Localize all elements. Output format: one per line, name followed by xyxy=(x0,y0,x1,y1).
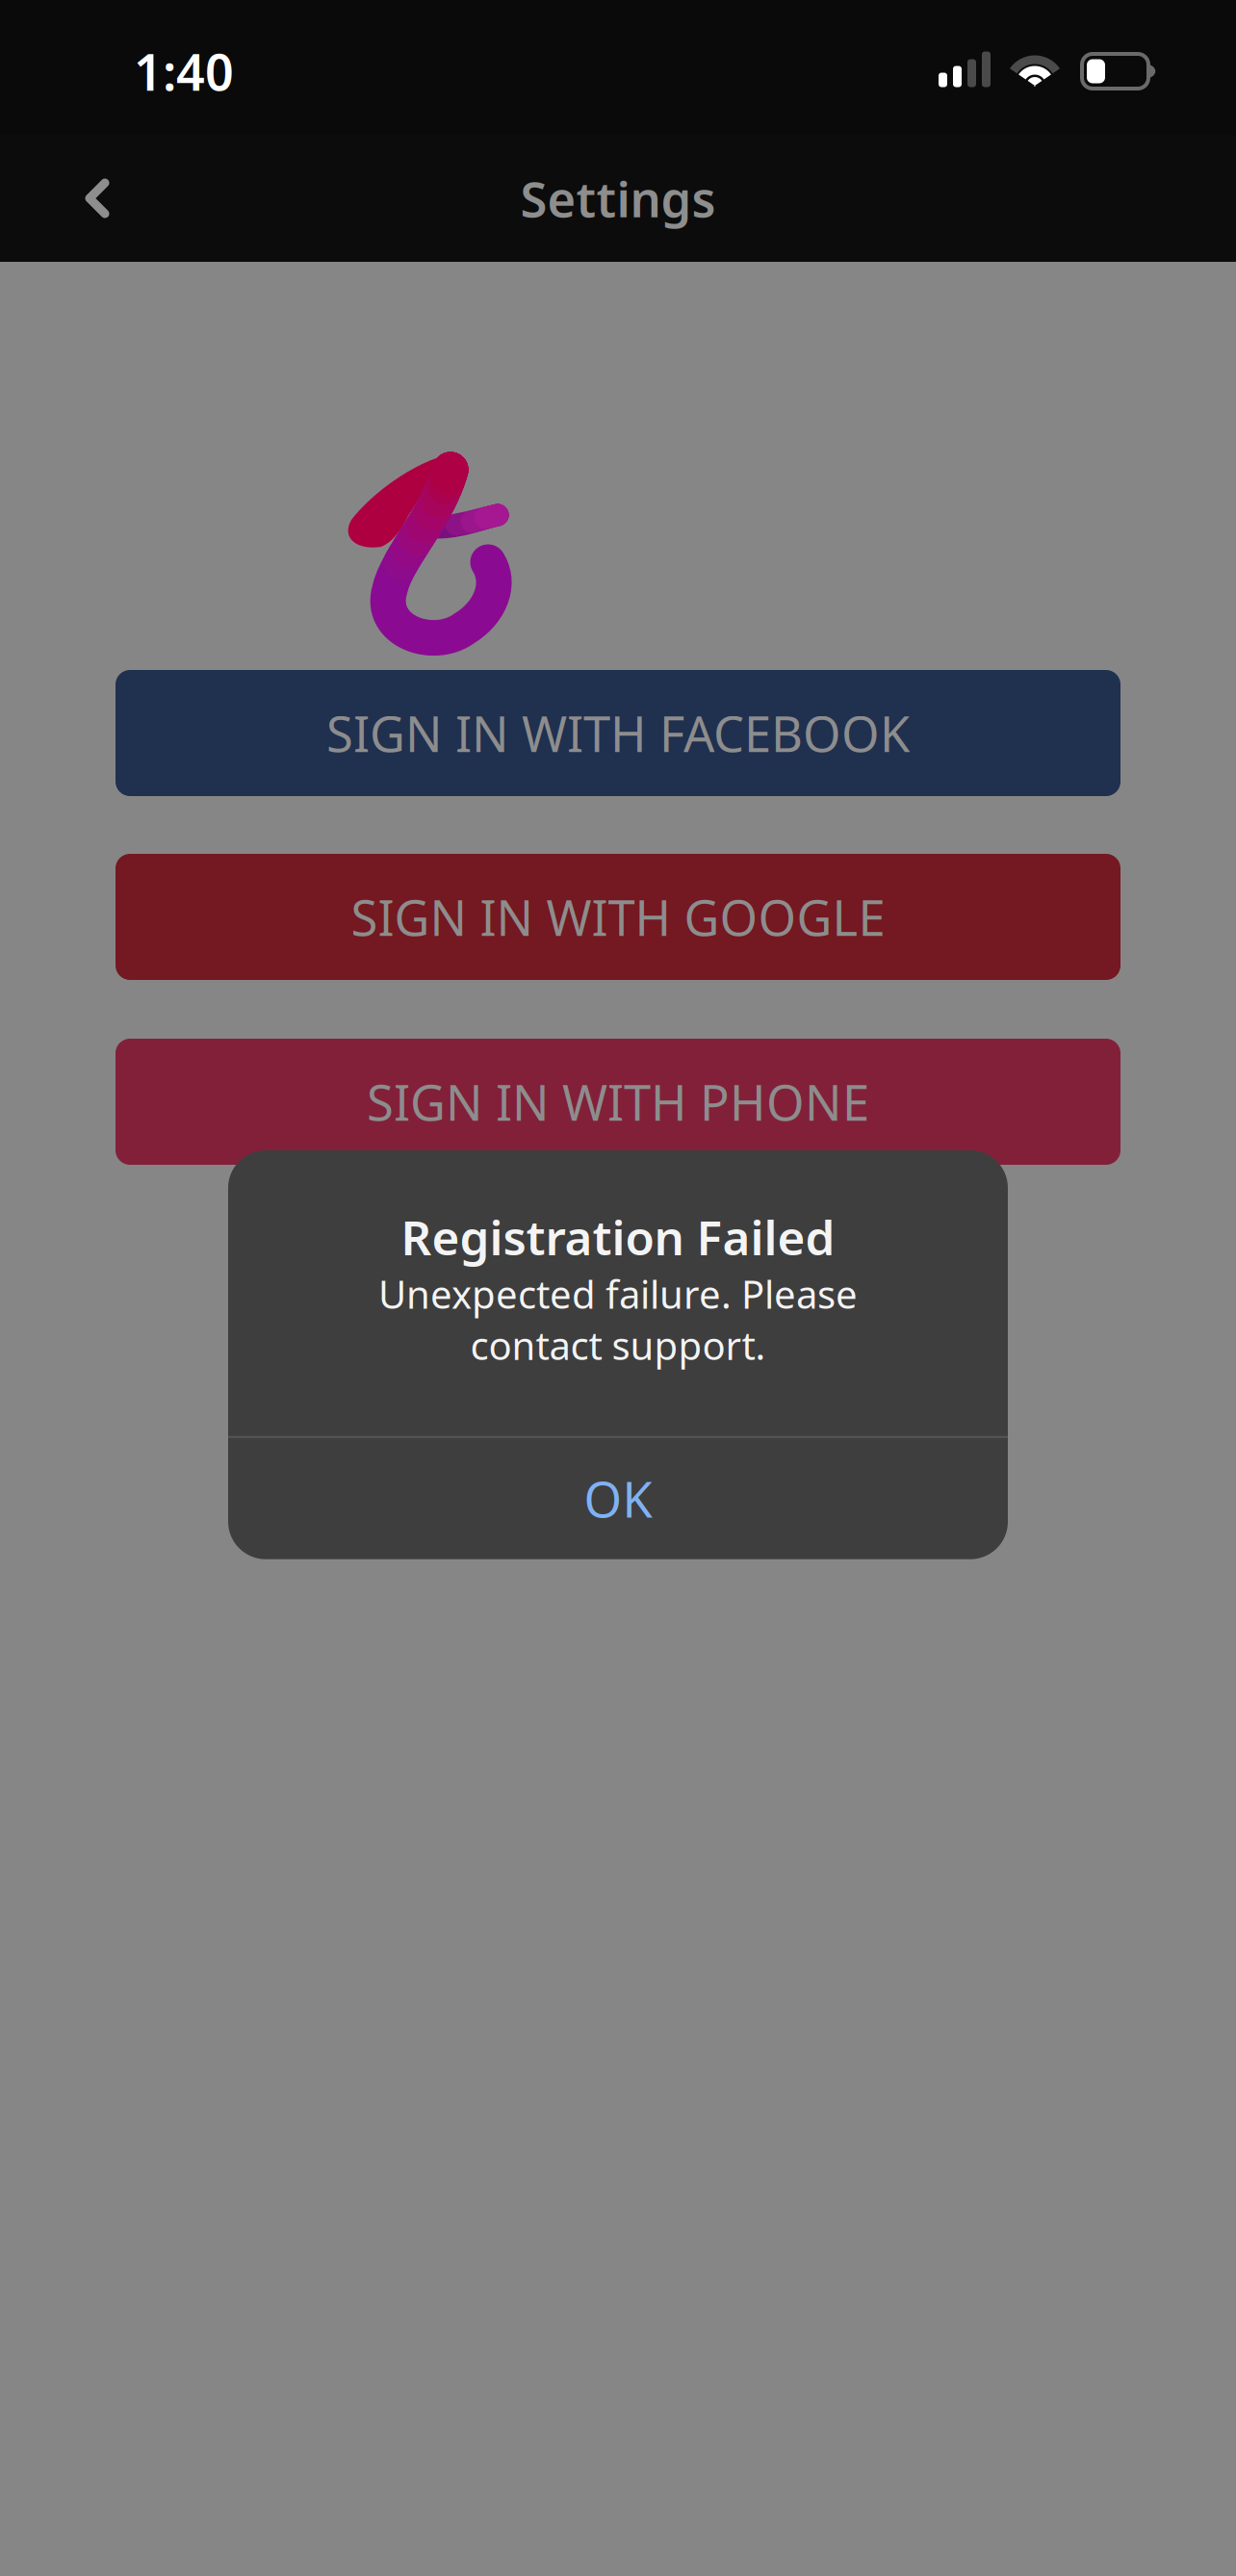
staticText: SIGN IN WITH GOOGLE xyxy=(351,885,885,949)
staticText: contact support. xyxy=(470,1319,766,1370)
staticText: Settings xyxy=(520,166,716,231)
button[interactable]: Back xyxy=(0,142,148,254)
staticText: 1:40 xyxy=(134,38,234,105)
button[interactable]: SIGN IN WITH GOOGLE xyxy=(116,854,1120,980)
staticText: OK xyxy=(584,1466,652,1531)
staticText: Unexpected failure. Please xyxy=(378,1268,858,1319)
staticText: Registration Failed xyxy=(401,1205,835,1268)
button[interactable]: OK xyxy=(228,1438,1008,1559)
button[interactable]: SIGN IN WITH PHONE xyxy=(116,1039,1120,1165)
staticText: SIGN IN WITH FACEBOOK xyxy=(326,701,910,765)
button[interactable]: SIGN IN WITH FACEBOOK xyxy=(116,670,1120,796)
staticText: SIGN IN WITH PHONE xyxy=(367,1069,869,1134)
